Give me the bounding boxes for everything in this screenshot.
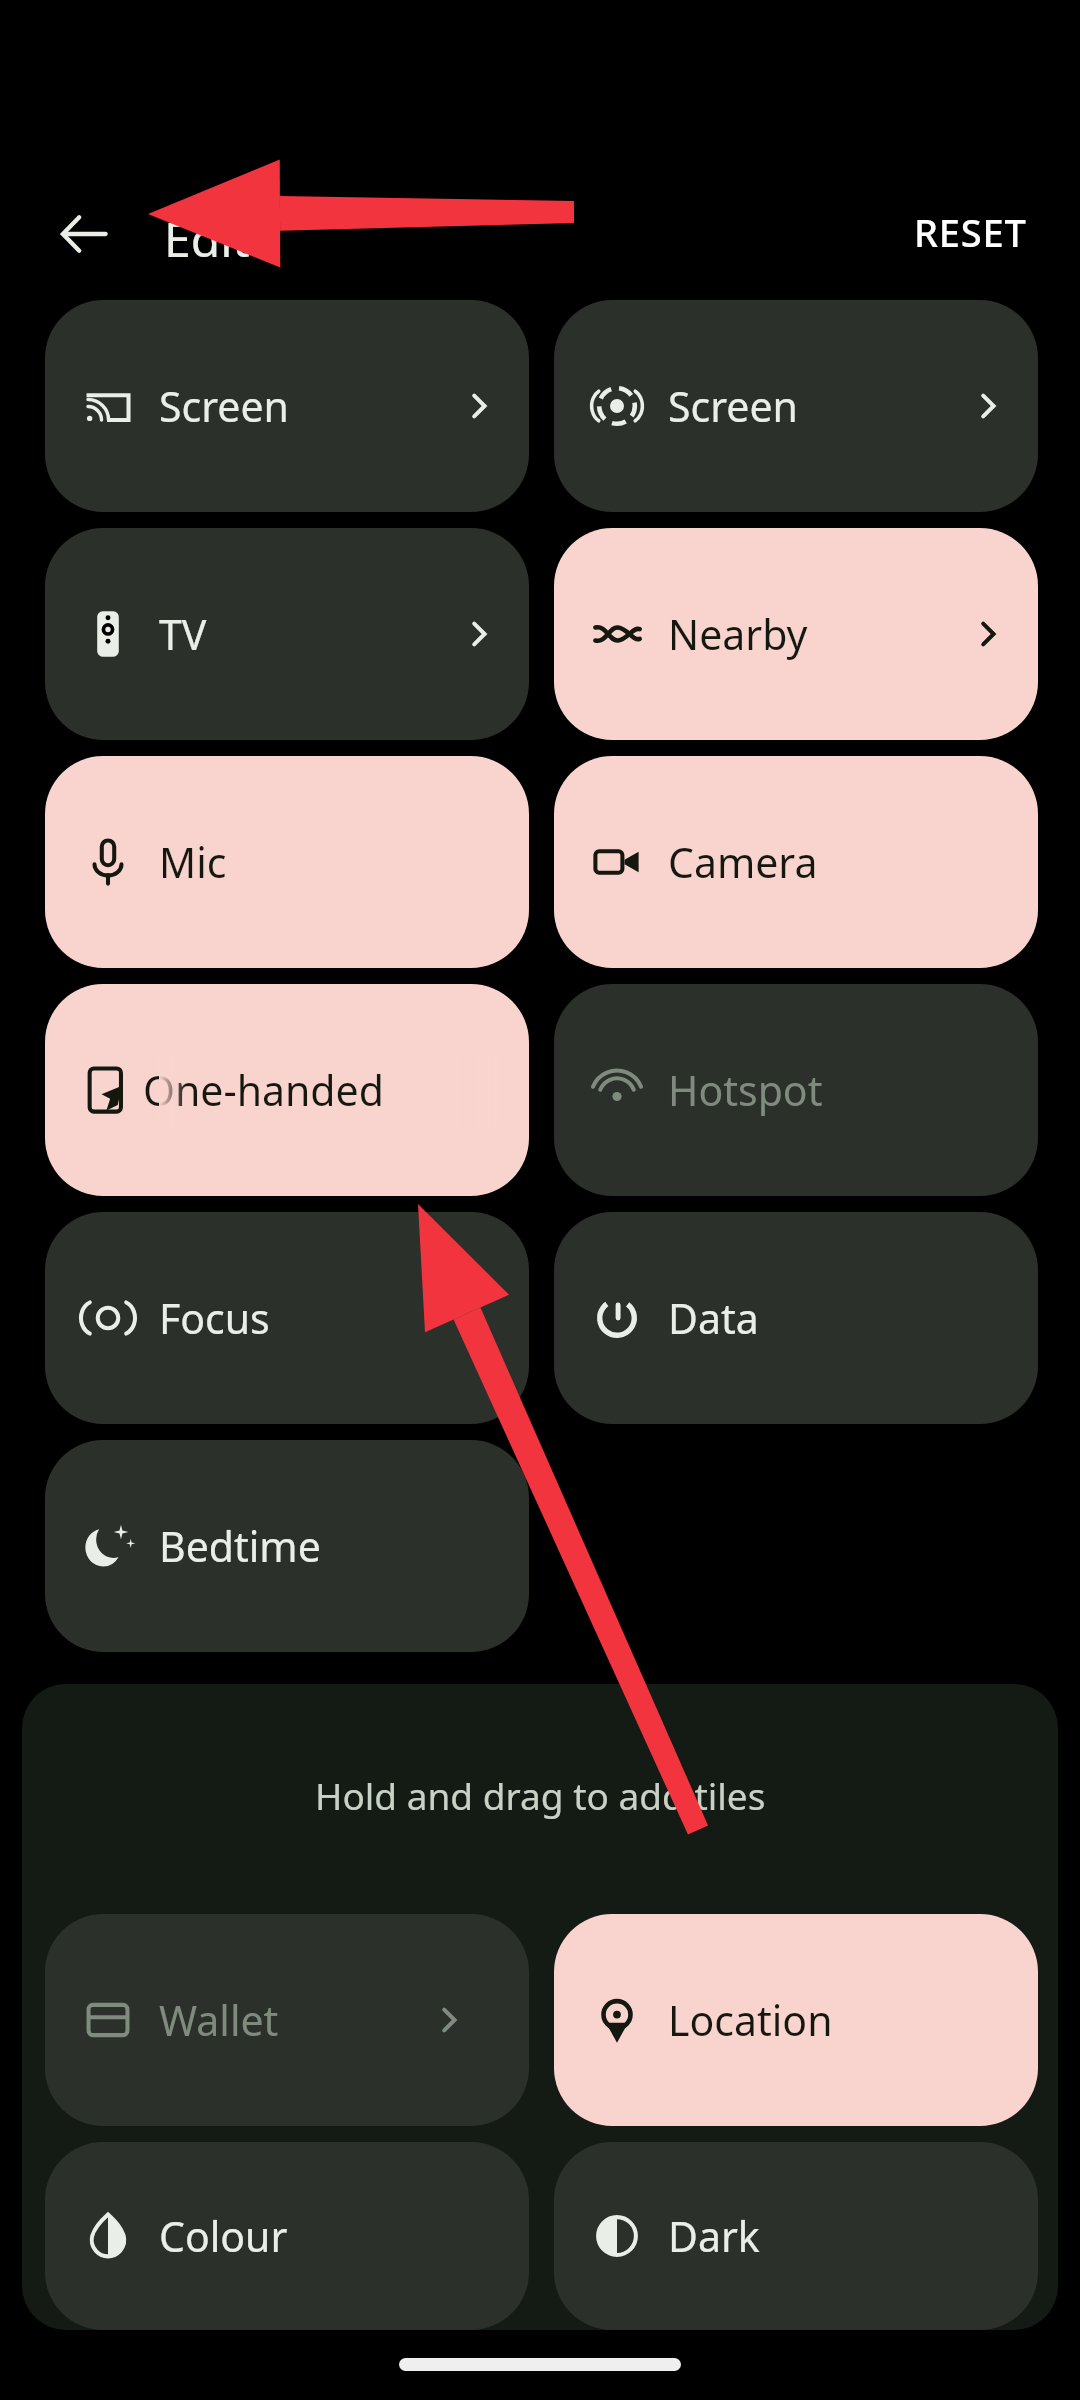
staticText: RESET bbox=[914, 206, 1027, 258]
staticText: One-handed mode bbox=[143, 1062, 483, 1118]
staticText: Focus mode bbox=[159, 1290, 329, 1346]
staticText: Camera access bbox=[668, 834, 838, 890]
staticText: Colour inversion bbox=[159, 2208, 329, 2264]
button[interactable]: Location bbox=[554, 1914, 1038, 2126]
button[interactable]: Data Saver bbox=[554, 1212, 1038, 1424]
button[interactable]: Colour inversion bbox=[45, 2142, 529, 2330]
staticText: Data Saver bbox=[668, 1290, 838, 1346]
staticText: TV remote bbox=[159, 606, 309, 662]
staticText: Dark theme bbox=[668, 2208, 838, 2264]
button[interactable]: Focus mode bbox=[45, 1212, 529, 1424]
button[interactable]: Hotspot bbox=[554, 984, 1038, 1196]
staticText: Hotspot bbox=[668, 1062, 823, 1118]
button[interactable]: Bedtime mode bbox=[45, 1440, 529, 1652]
button[interactable]: Screen record bbox=[554, 300, 1038, 512]
button[interactable]: RESET bbox=[898, 192, 1043, 272]
button[interactable]: Wallet bbox=[45, 1914, 529, 2126]
staticText: Bedtime mode bbox=[159, 1518, 329, 1574]
staticText: Screen record bbox=[668, 378, 818, 434]
button[interactable]: Camera access bbox=[554, 756, 1038, 968]
button[interactable]: Nearby Share bbox=[554, 528, 1038, 740]
button[interactable]: One-handed mode bbox=[45, 984, 529, 1196]
staticText: Nearby Share bbox=[668, 606, 818, 662]
staticText: Location bbox=[668, 1992, 833, 2048]
button[interactable]: TV remote bbox=[45, 528, 529, 740]
staticText: Hold and drag to add tiles bbox=[315, 1770, 766, 1820]
button[interactable]: Mic access bbox=[45, 756, 529, 968]
staticText: Mic access bbox=[159, 834, 329, 890]
button[interactable]: Dark theme bbox=[554, 2142, 1038, 2330]
staticText: Edit bbox=[164, 206, 250, 271]
staticText: Wallet bbox=[159, 1992, 279, 2048]
button[interactable]: Screen Cast bbox=[45, 300, 529, 512]
button[interactable]: Back bbox=[44, 194, 124, 274]
staticText: Screen Cast bbox=[159, 378, 309, 434]
